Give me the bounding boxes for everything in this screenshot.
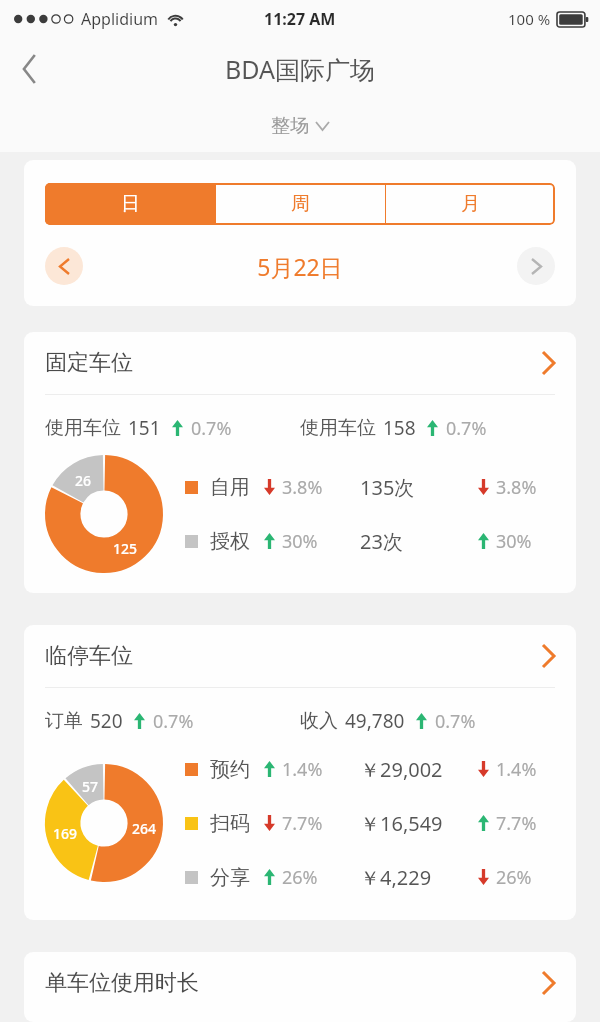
staticText: 月 <box>461 192 480 216</box>
staticText: 169 <box>53 824 78 843</box>
staticText: 520 <box>90 708 123 734</box>
staticText: 分享 <box>210 865 250 890</box>
staticText: 26% <box>282 865 318 890</box>
button[interactable]: Next day <box>517 247 555 285</box>
staticText: 7.7% <box>496 811 537 836</box>
staticText: 固定车位 <box>45 349 542 377</box>
staticText: ￥29,002 <box>360 756 443 783</box>
staticText: 使用车位 <box>45 416 121 440</box>
staticText: 158 <box>383 415 416 441</box>
staticText: 49,780 <box>345 708 405 734</box>
button[interactable]: 日 <box>45 183 215 225</box>
staticText: 临停车位 <box>45 642 542 670</box>
button[interactable]: 整场 <box>271 114 329 138</box>
staticText: 5月22日 <box>83 251 517 282</box>
staticText: 扫码 <box>210 811 250 836</box>
staticText: 0.7% <box>191 416 232 441</box>
staticText: 1.4% <box>496 757 537 782</box>
staticText: 3.8% <box>282 475 323 500</box>
staticText: 7.7% <box>282 811 323 836</box>
staticText: 151 <box>128 415 161 441</box>
staticText: 11:27 AM <box>264 8 336 30</box>
button[interactable]: 固定车位 <box>24 332 576 394</box>
staticText: ￥16,549 <box>360 810 443 837</box>
staticText: ￥4,229 <box>360 864 432 891</box>
staticText: 授权 <box>210 529 250 554</box>
staticText: 57 <box>82 777 99 796</box>
staticText: 30% <box>496 529 532 554</box>
staticText: 0.7% <box>153 709 194 734</box>
staticText: Applidium <box>81 8 158 30</box>
staticText: 26 <box>75 471 92 490</box>
staticText: 订单 <box>45 709 83 733</box>
button[interactable]: 月 <box>386 183 555 225</box>
staticText: 23次 <box>360 528 403 555</box>
button[interactable]: Back <box>0 37 60 100</box>
button[interactable]: 单车位使用时长 <box>24 952 576 1014</box>
staticText: 135次 <box>360 474 415 501</box>
staticText: 100 % <box>508 9 551 29</box>
staticText: 125 <box>113 539 138 558</box>
staticText: 0.7% <box>446 416 487 441</box>
staticText: 30% <box>282 529 318 554</box>
staticText: 1.4% <box>282 757 323 782</box>
staticText: 264 <box>132 819 157 838</box>
staticText: 日 <box>121 192 140 216</box>
staticText: 周 <box>291 192 310 216</box>
staticText: BDA国际广场 <box>225 52 375 86</box>
staticText: 自用 <box>210 475 250 500</box>
button[interactable]: 周 <box>216 183 385 225</box>
button[interactable]: Previous day <box>45 247 83 285</box>
staticText: 26% <box>496 865 532 890</box>
staticText: 整场 <box>271 114 309 138</box>
staticText: 使用车位 <box>300 416 376 440</box>
staticText: 0.7% <box>435 709 476 734</box>
button[interactable]: 临停车位 <box>24 625 576 687</box>
staticText: 3.8% <box>496 475 537 500</box>
staticText: 预约 <box>210 757 250 782</box>
staticText: 单车位使用时长 <box>45 969 542 997</box>
staticText: 收入 <box>300 709 338 733</box>
